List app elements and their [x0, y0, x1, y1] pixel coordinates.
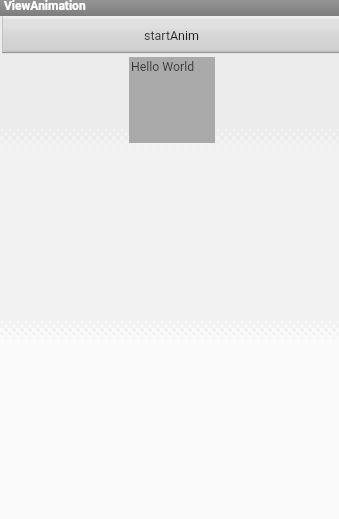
staticText: ViewAnimation — [4, 0, 86, 13]
staticText: startAnim — [144, 28, 200, 43]
button[interactable]: startAnim — [0, 16, 339, 55]
staticText: Hello World — [131, 60, 195, 74]
